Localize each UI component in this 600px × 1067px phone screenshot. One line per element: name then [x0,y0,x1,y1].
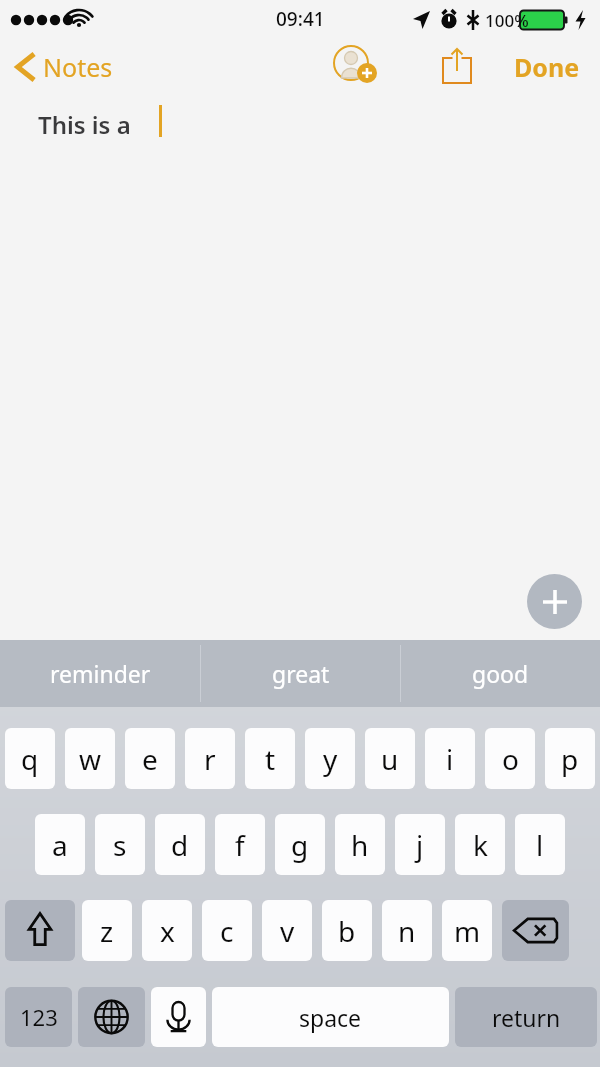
staticText: Notes [43,50,113,84]
staticText: f [235,826,245,864]
staticText: o [502,740,519,778]
button[interactable]: o [485,728,535,789]
staticText: v [280,912,295,950]
staticText: a [52,826,68,864]
button[interactable]: Share [428,40,486,94]
button[interactable]: b [322,900,372,961]
button[interactable]: Add attachment [527,574,582,629]
staticText: x [160,912,175,950]
staticText: k [473,826,488,864]
staticText: return [492,1002,561,1033]
button[interactable]: Notes [10,45,119,89]
button[interactable]: x [142,900,192,961]
staticText: u [381,740,399,778]
button[interactable]: w [65,728,115,789]
button[interactable]: r [185,728,235,789]
staticText: great [272,658,330,689]
staticText: reminder [50,658,151,689]
button[interactable]: j [395,814,445,875]
staticText: y [323,740,338,778]
button[interactable]: space [212,987,449,1047]
staticText: t [265,740,276,778]
button[interactable]: m [442,900,492,961]
staticText: c [220,912,234,950]
staticText: 123 [20,1002,58,1032]
button[interactable]: Dictate [151,987,206,1047]
button[interactable]: Shift [5,900,75,961]
staticText: g [291,826,309,864]
staticText: n [398,912,416,950]
button[interactable]: t [245,728,295,789]
button[interactable]: q [5,728,55,789]
staticText: i [446,740,454,778]
button[interactable]: reminder [0,640,200,707]
button[interactable]: good [401,640,600,707]
staticText: s [113,826,127,864]
staticText: r [204,740,216,778]
staticText: z [100,912,114,950]
staticText: Done [514,50,580,84]
staticText: w [79,740,102,778]
button[interactable]: e [125,728,175,789]
button[interactable]: return [455,987,597,1047]
button[interactable]: Add people [328,40,386,94]
staticText: q [21,740,39,778]
staticText: space [299,1002,362,1033]
button[interactable]: c [202,900,252,961]
button[interactable]: k [455,814,505,875]
button[interactable]: l [515,814,565,875]
button[interactable]: f [215,814,265,875]
button[interactable]: y [305,728,355,789]
button[interactable]: a [35,814,85,875]
staticText: 09:41 [276,6,325,32]
staticText: l [536,826,544,864]
button[interactable]: 123 [5,987,72,1047]
button[interactable]: Done [508,44,586,90]
staticText: This is a [38,108,131,141]
button[interactable]: s [95,814,145,875]
button[interactable]: p [545,728,595,789]
button[interactable]: n [382,900,432,961]
staticText: b [338,912,356,950]
staticText: 100% [485,9,529,32]
button[interactable]: d [155,814,205,875]
button[interactable]: v [262,900,312,961]
staticText: good [472,658,529,689]
staticText: d [171,826,189,864]
staticText: h [351,826,369,864]
button[interactable]: h [335,814,385,875]
staticText: m [454,912,481,950]
staticText: p [561,740,579,778]
button[interactable]: great [201,640,400,707]
button[interactable]: Switch keyboard [78,987,145,1047]
staticText: e [142,740,158,778]
button[interactable]: u [365,728,415,789]
button[interactable]: Delete [502,900,569,961]
button[interactable]: i [425,728,475,789]
button[interactable]: g [275,814,325,875]
button[interactable]: z [82,900,132,961]
staticText: j [416,826,424,864]
